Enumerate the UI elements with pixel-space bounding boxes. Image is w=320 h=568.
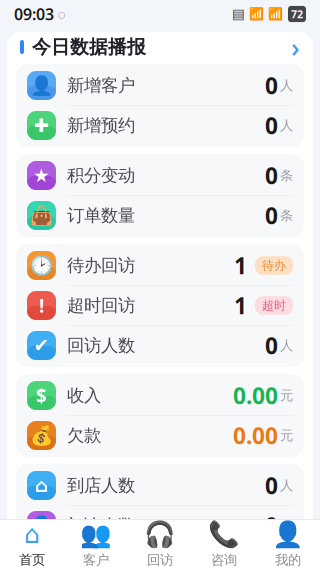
staticText: 1 <box>234 250 247 280</box>
staticText: 0.00 <box>233 420 278 450</box>
staticText: 📞 <box>208 520 240 549</box>
staticText: 人 <box>280 517 293 534</box>
staticText: 元 <box>280 427 293 444</box>
staticText: 新增预约 <box>67 115 135 136</box>
staticText: 0.00 <box>233 380 278 410</box>
staticText: 人 <box>280 557 293 568</box>
button[interactable]: 🎧 <box>128 520 192 568</box>
staticText: ★ <box>33 165 50 186</box>
button[interactable]: 🕑 <box>16 246 304 285</box>
staticText: 首页 <box>19 552 45 568</box>
staticText: 09:03 <box>14 3 54 25</box>
staticText: 0 <box>265 330 278 360</box>
staticText: 收入 <box>67 385 101 406</box>
staticText: 元 <box>280 387 293 404</box>
staticText: 欠款 <box>67 425 101 446</box>
staticText: 📶 <box>268 7 283 21</box>
staticText: 人 <box>280 117 293 134</box>
staticText: ◌ <box>58 5 66 23</box>
staticText: 待办 <box>262 258 286 273</box>
staticText: 咨询 <box>211 552 237 568</box>
staticText: 0 <box>265 200 278 230</box>
button[interactable]: 👜 <box>16 196 304 235</box>
staticText: 0 <box>265 160 278 190</box>
staticText: 👤 <box>272 520 304 549</box>
button[interactable]: 👥 <box>64 520 128 568</box>
staticText: 人 <box>280 477 293 494</box>
staticText: 72 <box>291 7 303 21</box>
staticText: ▤ <box>232 6 245 21</box>
button[interactable]: $ <box>16 376 304 415</box>
staticText: ⌂ <box>35 475 48 496</box>
staticText: 👥 <box>80 520 112 549</box>
staticText: ✚ <box>33 115 49 136</box>
staticText: 人 <box>280 337 293 354</box>
staticText: 0 <box>265 510 278 540</box>
button[interactable]: ★ <box>16 156 304 195</box>
staticText: 🎧 <box>144 520 176 549</box>
staticText: › <box>291 29 300 65</box>
staticText: 👤 <box>30 75 53 96</box>
staticText: 超时回访 <box>67 295 135 316</box>
staticText: 👤 <box>30 515 53 536</box>
staticText: 客户 <box>83 552 109 568</box>
staticText: 待办回访 <box>67 255 135 276</box>
staticText: 👤 <box>30 555 53 568</box>
staticText: 0 <box>265 70 278 100</box>
staticText: 👜 <box>30 205 53 226</box>
staticText: 条 <box>280 207 293 224</box>
button[interactable]: 💰 <box>16 416 304 455</box>
staticText: 初诊人数 <box>67 515 135 536</box>
button[interactable]: ✚ <box>16 106 304 145</box>
staticText: 人 <box>280 77 293 94</box>
staticText: 回访 <box>147 552 173 568</box>
staticText: 订单数量 <box>67 205 135 226</box>
staticText: 回访人数 <box>67 335 135 356</box>
staticText: 0 <box>265 470 278 500</box>
staticText: 我的 <box>275 552 301 568</box>
staticText: 1 <box>234 290 247 320</box>
button[interactable]: ✔ <box>16 326 304 365</box>
button[interactable]: ⌂ <box>16 466 304 505</box>
button[interactable]: 👤 <box>16 66 304 105</box>
button[interactable]: 👤 <box>256 520 320 568</box>
button[interactable]: 👤 <box>16 546 304 568</box>
button[interactable]: 📞 <box>192 520 256 568</box>
button[interactable]: ⌂ <box>0 520 64 568</box>
staticText: 0 <box>265 110 278 140</box>
staticText: 积分变动 <box>67 165 135 186</box>
staticText: 0 <box>265 550 278 568</box>
staticText: 到店人数 <box>67 475 135 496</box>
button[interactable]: ! <box>16 286 304 325</box>
staticText: 📶 <box>249 7 264 21</box>
staticText: 💰 <box>30 425 53 446</box>
button[interactable]: 👤 <box>16 506 304 545</box>
staticText: 🕑 <box>30 255 53 276</box>
staticText: 今日数据播报 <box>32 35 146 58</box>
staticText: 超时 <box>262 298 286 313</box>
staticText: ✔ <box>33 335 49 356</box>
staticText: 条 <box>280 167 293 184</box>
staticText: 复诊人数 <box>67 555 135 568</box>
staticText: ⌂ <box>24 520 40 549</box>
staticText: 新增客户 <box>67 75 135 96</box>
button[interactable]: 今日数据播报 <box>7 32 313 62</box>
staticText: $ <box>36 383 47 408</box>
staticText: ! <box>39 293 44 318</box>
